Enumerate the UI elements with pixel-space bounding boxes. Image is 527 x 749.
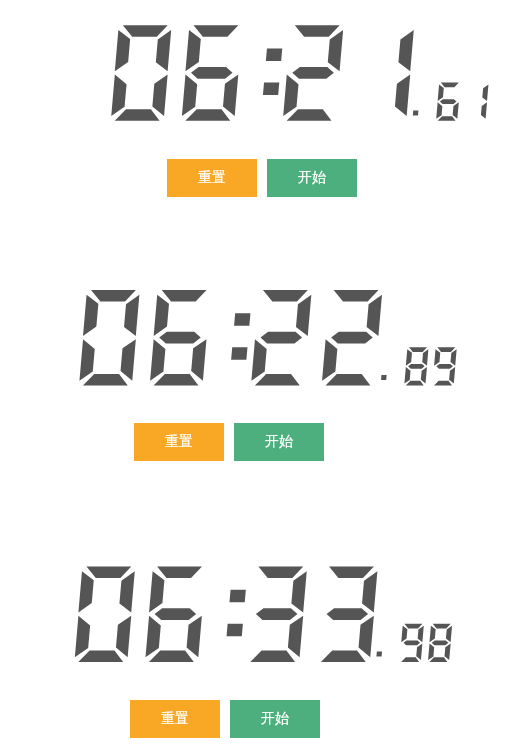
button[interactable]: 重置 — [134, 423, 224, 461]
staticText: 重置 — [198, 169, 226, 187]
staticText: 重置 — [165, 433, 193, 451]
button[interactable]: 开始 — [234, 423, 324, 461]
staticText: 开始 — [265, 433, 293, 451]
button[interactable]: 开始 — [230, 700, 320, 738]
button[interactable]: 重置 — [130, 700, 220, 738]
staticText: 开始 — [298, 169, 326, 187]
staticText: 重置 — [161, 710, 189, 728]
button[interactable]: 开始 — [267, 159, 357, 197]
button[interactable]: 重置 — [167, 159, 257, 197]
staticText: 开始 — [261, 710, 289, 728]
